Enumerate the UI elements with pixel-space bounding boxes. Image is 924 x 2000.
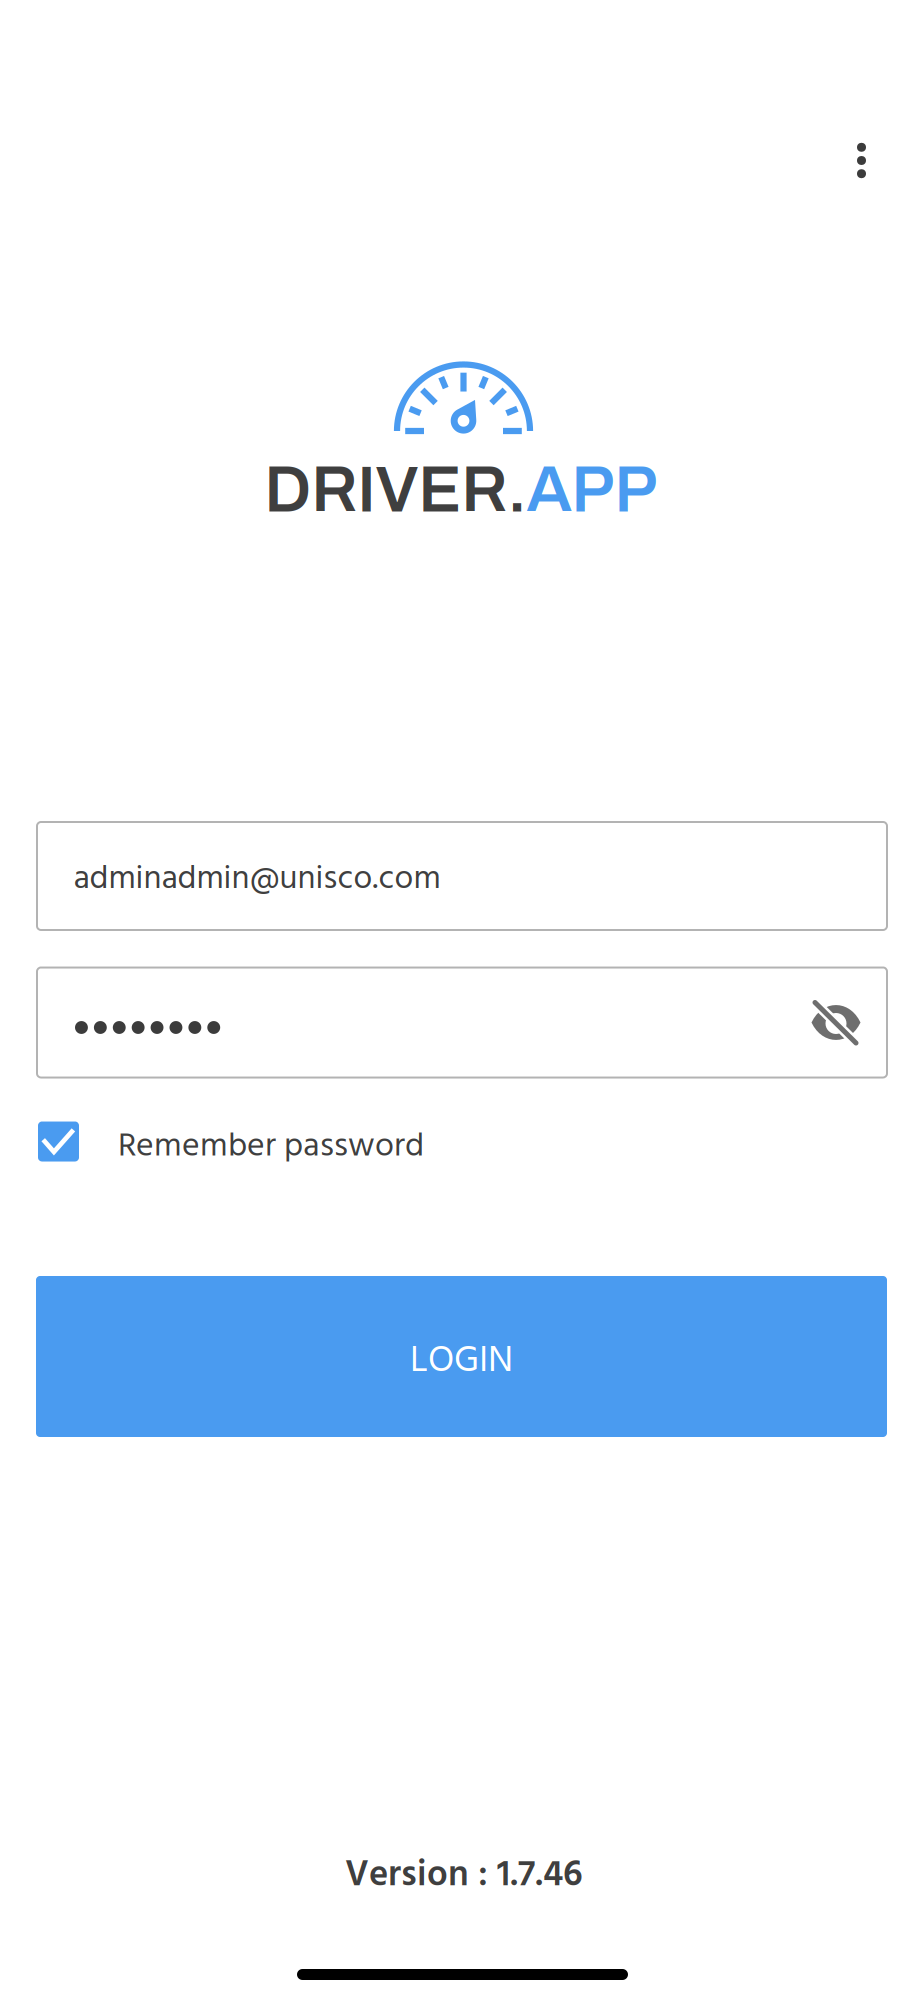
staticText: adminadmin@unisco.com [73,853,440,906]
staticText: LOGIN [410,1332,513,1391]
staticText: Version : 1.7.46 [345,1847,583,1905]
staticText: Remember password [118,1120,424,1174]
staticText: APP [526,455,657,525]
button[interactable]: Show password [801,987,871,1057]
button[interactable]: More options [822,121,900,199]
button[interactable]: Remember password [38,1106,498,1176]
staticText: DRIVER. [264,455,526,525]
button[interactable]: LOGIN [36,1276,887,1437]
